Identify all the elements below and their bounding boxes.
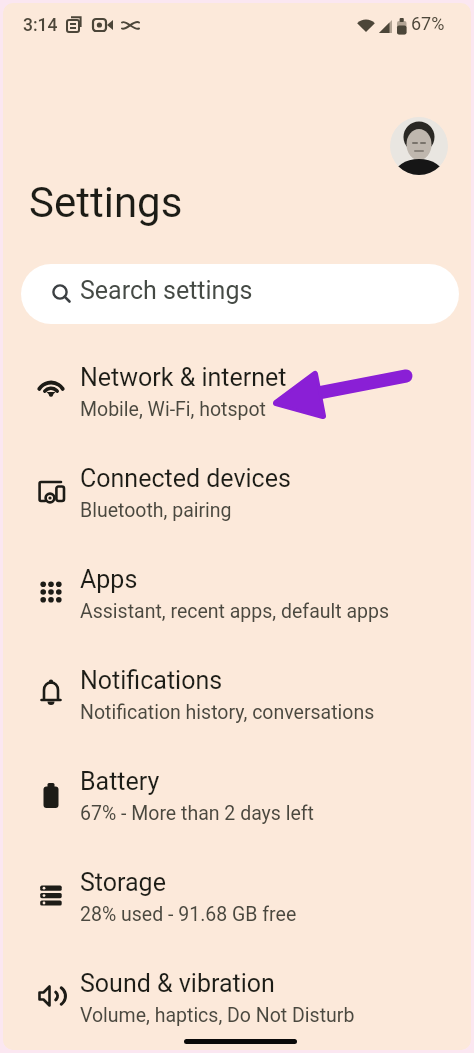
button[interactable]: Battery xyxy=(3,748,471,849)
staticText: Assistant, recent apps, default apps xyxy=(80,600,390,623)
staticText: 67% xyxy=(411,13,445,34)
button[interactable]: Notifications xyxy=(3,647,471,748)
staticText: 28% used - 91.68 GB free xyxy=(80,903,297,926)
button[interactable]: Search settings xyxy=(21,264,459,324)
button[interactable]: Network & internet xyxy=(3,344,471,445)
staticText: 3:14 xyxy=(23,15,58,36)
staticText: Bluetooth, pairing xyxy=(80,499,232,522)
button[interactable]: Sound & vibration xyxy=(3,950,471,1050)
staticText: Battery xyxy=(80,767,160,796)
staticText: 67% - More than 2 days left xyxy=(80,802,314,825)
staticText: Storage xyxy=(80,868,166,897)
staticText: Apps xyxy=(80,565,138,594)
staticText: Connected devices xyxy=(80,464,291,493)
button[interactable] xyxy=(390,117,448,175)
button[interactable]: Storage xyxy=(3,849,471,950)
staticText: Sound & vibration xyxy=(80,969,275,998)
staticText: Search settings xyxy=(80,276,253,305)
staticText: Mobile, Wi-Fi, hotspot xyxy=(80,398,266,421)
button[interactable]: Connected devices xyxy=(3,445,471,546)
staticText: Notifications xyxy=(80,666,223,695)
button[interactable]: Apps xyxy=(3,546,471,647)
staticText: Settings xyxy=(29,178,183,227)
staticText: Network & internet xyxy=(80,363,287,392)
staticText: Notification history, conversations xyxy=(80,701,375,724)
staticText: Volume, haptics, Do Not Disturb xyxy=(80,1004,355,1027)
